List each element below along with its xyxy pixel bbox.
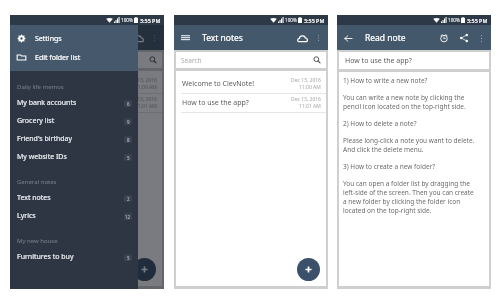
staticText: 3:55 PM bbox=[304, 17, 325, 24]
staticText: And click the delete menu. bbox=[343, 145, 424, 154]
staticText: 5 bbox=[127, 255, 130, 261]
button[interactable]: Sync bbox=[295, 31, 309, 45]
staticText: 11:00 AM bbox=[299, 84, 321, 91]
staticText: 5 bbox=[127, 155, 130, 161]
staticText: Edit folder list bbox=[35, 53, 81, 63]
staticText: 11:01 AM bbox=[299, 103, 321, 110]
button[interactable]: My website IDs bbox=[10, 148, 138, 166]
button[interactable]: Text notes bbox=[10, 189, 138, 207]
staticText: 100% bbox=[121, 17, 133, 23]
button[interactable]: Furnitures to buy bbox=[10, 248, 138, 266]
button[interactable]: More options bbox=[476, 33, 486, 43]
staticText: Dec 13, 2016 bbox=[127, 77, 157, 84]
staticText: Read note bbox=[365, 32, 406, 44]
staticText: General notes bbox=[17, 178, 57, 186]
staticText: 3) How to create a new folder? bbox=[343, 162, 436, 171]
staticText: You can write a new note by clicking the bbox=[343, 93, 465, 102]
staticText: 2 bbox=[127, 196, 130, 202]
staticText: 100% bbox=[448, 17, 460, 23]
staticText: How to use the app? bbox=[182, 98, 249, 108]
staticText: Search bbox=[17, 56, 38, 65]
button[interactable]: Edit folder list bbox=[10, 48, 138, 67]
staticText: 9 bbox=[127, 119, 130, 125]
staticText: Friend's birthday bbox=[17, 134, 73, 144]
button[interactable]: How to use the app? bbox=[12, 94, 162, 112]
staticText: Dec 13, 2016 bbox=[291, 96, 321, 103]
staticText: 3:55 PM bbox=[467, 17, 488, 24]
staticText: 100% bbox=[121, 17, 133, 23]
staticText: 8 bbox=[127, 137, 130, 143]
staticText: My new house bbox=[17, 237, 58, 245]
staticText: Welcome to ClevNote! bbox=[182, 79, 255, 89]
staticText: 3:55 PM bbox=[140, 17, 161, 24]
button[interactable]: Search bbox=[176, 52, 326, 68]
button[interactable]: Sync bbox=[131, 31, 145, 45]
button[interactable]: My bank accounts bbox=[10, 94, 138, 112]
staticText: Daily life memos bbox=[17, 83, 64, 91]
staticText: How to use the app? bbox=[345, 56, 412, 66]
staticText: Dec 13, 2016 bbox=[127, 96, 157, 103]
button[interactable]: Open navigation drawer bbox=[179, 31, 192, 44]
staticText: Welcome to ClevNote! bbox=[18, 79, 91, 89]
staticText: Settings bbox=[35, 34, 62, 44]
staticText: pencil icon located on the top-right sid… bbox=[343, 102, 466, 111]
button[interactable]: New note bbox=[297, 258, 320, 281]
button[interactable]: Search bbox=[12, 52, 162, 68]
staticText: 2) How to delete a note? bbox=[343, 119, 417, 128]
button[interactable]: Set alarm bbox=[437, 31, 451, 45]
staticText: left-side of the screen. Then you can cr… bbox=[343, 188, 474, 197]
staticText: Search bbox=[181, 56, 202, 65]
button[interactable]: New note bbox=[133, 258, 156, 281]
staticText: My website IDs bbox=[17, 152, 67, 162]
staticText: Text notes bbox=[17, 193, 51, 203]
button[interactable]: Welcome to ClevNote! bbox=[12, 75, 162, 93]
button[interactable]: Friend's birthday bbox=[10, 130, 138, 148]
button[interactable]: More options bbox=[313, 33, 323, 43]
staticText: How to use the app? bbox=[18, 98, 85, 108]
staticText: 3:55 PM bbox=[140, 17, 161, 24]
staticText: 6 bbox=[127, 101, 130, 107]
staticText: located on the top-right side. bbox=[343, 206, 432, 215]
staticText: Furnitures to buy bbox=[17, 252, 74, 262]
staticText: 11:00 AM bbox=[135, 84, 157, 91]
staticText: a new folder by clicking the folder icon bbox=[343, 197, 461, 206]
staticText: You can open a folder list by dragging t… bbox=[343, 179, 470, 188]
staticText: Grocery list bbox=[17, 116, 55, 126]
staticText: 100% bbox=[285, 17, 297, 23]
button[interactable]: Welcome to ClevNote! bbox=[176, 75, 326, 93]
staticText: 11:01 AM bbox=[135, 103, 157, 110]
button[interactable]: Grocery list bbox=[10, 112, 138, 130]
staticText: Text notes bbox=[38, 32, 79, 44]
staticText: Text notes bbox=[202, 32, 243, 44]
staticText: My bank accounts bbox=[17, 98, 77, 108]
staticText: 1) How to write a new note? bbox=[343, 76, 428, 85]
button[interactable]: Share bbox=[457, 31, 471, 45]
staticText: Lyrics bbox=[17, 211, 36, 221]
staticText: Dec 13, 2016 bbox=[291, 77, 321, 84]
button[interactable]: More options bbox=[149, 33, 159, 43]
staticText: 12 bbox=[125, 214, 131, 220]
button[interactable]: How to use the app? bbox=[176, 94, 326, 112]
button[interactable]: Open navigation drawer bbox=[15, 31, 28, 44]
button[interactable]: Back bbox=[342, 32, 354, 44]
button[interactable]: Settings bbox=[10, 29, 138, 48]
staticText: Please long-click a note you want to del… bbox=[343, 136, 475, 145]
button[interactable]: Lyrics bbox=[10, 207, 138, 225]
